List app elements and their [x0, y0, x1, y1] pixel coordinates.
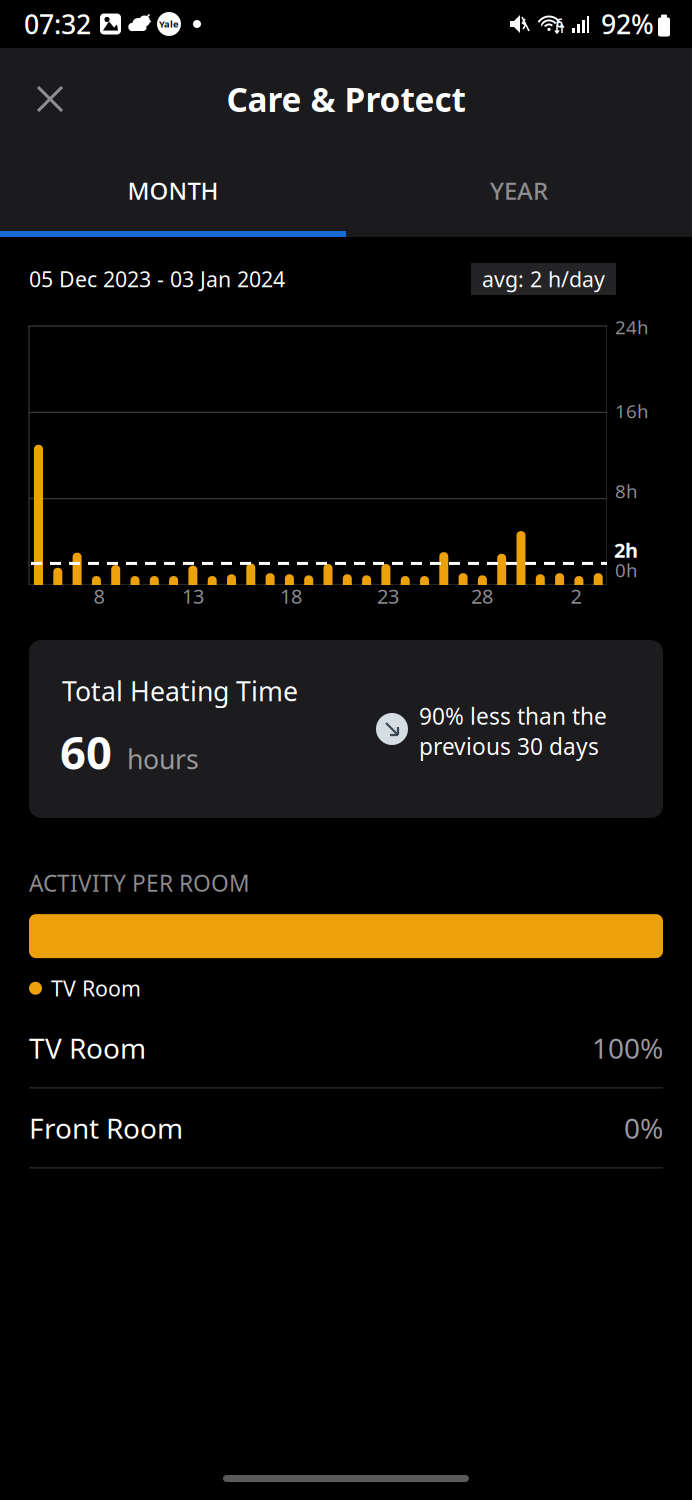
staticText: ACTIVITY PER ROOM [29, 868, 250, 898]
staticText: 0h [615, 558, 638, 582]
staticText: 0% [624, 1109, 663, 1146]
staticText: 8h [615, 479, 638, 503]
button[interactable]: YEAR [346, 150, 692, 231]
staticText: Front Room [29, 1109, 183, 1146]
staticText: 92% [601, 6, 654, 42]
staticText: 05 Dec 2023 - 03 Jan 2024 [29, 265, 285, 293]
button[interactable]: TV Room [0, 1008, 692, 1088]
staticText: TV Room [51, 974, 141, 1002]
staticText: 6 [556, 15, 563, 31]
staticText: 28 [471, 583, 493, 609]
button[interactable]: MONTH [0, 150, 346, 231]
staticText: 18 [280, 583, 302, 609]
staticText: 13 [182, 583, 204, 609]
staticText: hours [127, 741, 199, 777]
staticText: YEAR [490, 175, 548, 206]
staticText: 90% less than the previous 30 days [419, 701, 607, 761]
staticText: 23 [377, 583, 399, 609]
staticText: 8 [93, 583, 104, 609]
staticText: 24h [615, 315, 649, 339]
staticText: Care & Protect [226, 77, 465, 121]
staticText: avg: 2 h/day [482, 265, 605, 293]
staticText: TV Room [29, 1029, 146, 1066]
staticText: 16h [615, 399, 649, 423]
button[interactable]: Front Room [0, 1088, 692, 1168]
staticText: 2 [570, 583, 581, 609]
staticText: MONTH [127, 175, 218, 206]
staticText: Total Heating Time [62, 673, 298, 709]
button[interactable]: Close [18, 67, 82, 131]
staticText: Yale [159, 18, 179, 30]
staticText: 07:32 [24, 6, 91, 42]
staticText: 100% [592, 1029, 663, 1066]
staticText: 60 [60, 722, 112, 782]
staticText: 2h [614, 537, 638, 563]
